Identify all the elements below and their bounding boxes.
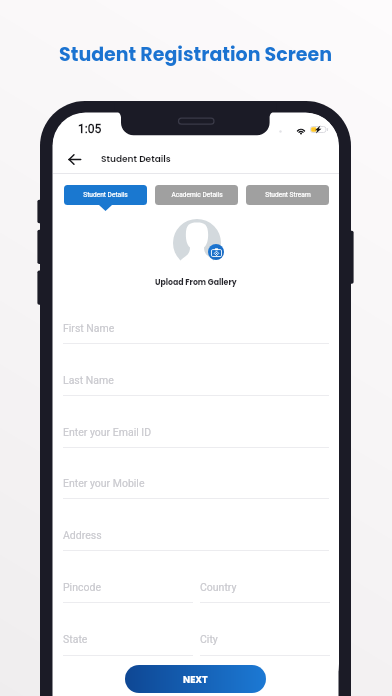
staticText: NEXT — [183, 673, 208, 686]
button[interactable]: NEXT — [125, 665, 266, 693]
staticText: 1:05 — [78, 122, 102, 136]
staticText: Upload From Gallery — [155, 277, 237, 288]
staticText: Pincode — [63, 581, 101, 593]
button[interactable]: Change profile photo — [208, 244, 224, 260]
staticText: Student Registration Screen — [59, 41, 333, 68]
button[interactable]: Back — [63, 148, 86, 171]
button[interactable]: Student Stream — [246, 185, 329, 205]
staticText: Address — [63, 529, 102, 541]
staticText: Last Name — [63, 374, 114, 386]
button[interactable]: Student Details — [64, 185, 147, 205]
staticText: Enter your Mobile — [63, 477, 145, 489]
staticText: Academic Details — [171, 191, 223, 199]
button[interactable]: Academic Details — [155, 185, 238, 205]
staticText: State — [63, 633, 88, 645]
staticText: Student Details — [101, 153, 171, 166]
staticText: Student Details — [83, 191, 128, 199]
staticText: City — [200, 633, 218, 645]
staticText: Enter your Email ID — [63, 426, 152, 438]
staticText: First Name — [63, 322, 115, 334]
staticText: Student Stream — [265, 191, 311, 199]
staticText: Country — [200, 581, 237, 593]
